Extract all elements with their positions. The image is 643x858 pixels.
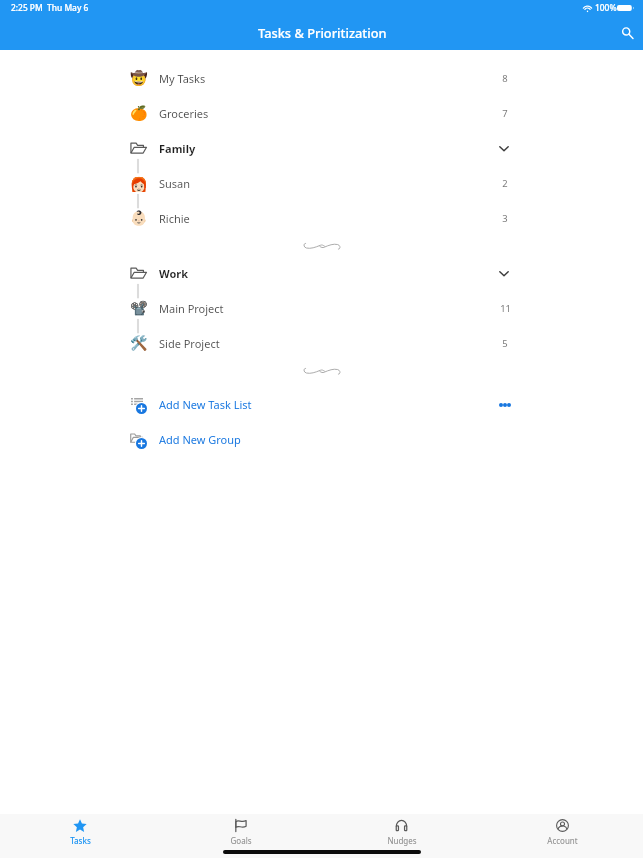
staticText: Account [547, 835, 578, 846]
staticText: 📽️ [130, 300, 148, 317]
button[interactable]: 🤠 [0, 61, 643, 96]
button[interactable]: Nudges [321, 814, 482, 858]
staticText: 7 [502, 107, 508, 120]
button[interactable]: Add New Group [0, 422, 643, 457]
staticText: 🍊 [130, 105, 148, 122]
button[interactable]: Family [0, 131, 643, 166]
staticText: 👩🏻‍🦰 [127, 176, 147, 192]
button[interactable]: Add New Task List [0, 387, 643, 422]
staticText: Tasks & Prioritization [258, 24, 387, 41]
button[interactable]: Search [615, 21, 637, 43]
staticText: Family [159, 141, 196, 156]
staticText: 2 [502, 177, 508, 190]
staticText: Susan [159, 176, 191, 191]
staticText: Tasks [70, 835, 91, 846]
staticText: 100% [595, 2, 617, 13]
button[interactable]: 👩🏻‍🦰 [0, 166, 643, 201]
staticText: Work [159, 266, 189, 281]
button[interactable]: 🍊 [0, 96, 643, 131]
button[interactable]: Tasks [0, 814, 160, 858]
button[interactable]: Goals [160, 814, 321, 858]
staticText: 5 [502, 337, 508, 350]
staticText: My Tasks [159, 71, 206, 86]
staticText: Side Project [159, 336, 220, 351]
staticText: 8 [502, 72, 508, 85]
button[interactable]: 🛠️ [0, 326, 643, 361]
button[interactable]: Work [0, 256, 643, 291]
staticText: Main Project [159, 301, 224, 316]
staticText: 11 [500, 302, 511, 315]
button[interactable]: 📽️ [0, 291, 643, 326]
button[interactable]: Account [482, 814, 643, 858]
staticText: Add New Task List [159, 397, 252, 412]
staticText: Nudges [387, 835, 417, 846]
staticText: 🛠️ [130, 335, 148, 352]
staticText: 🤠 [130, 70, 148, 87]
staticText: Richie [159, 211, 190, 226]
staticText: Add New Group [159, 432, 241, 447]
staticText: 2:25 PM [11, 2, 43, 13]
staticText: 👶🏻 [130, 210, 148, 227]
staticText: Goals [230, 835, 252, 846]
staticText: Groceries [159, 106, 209, 121]
button[interactable]: 👶🏻 [0, 201, 643, 236]
staticText: Thu May 6 [47, 2, 89, 13]
staticText: 3 [502, 212, 508, 225]
button[interactable]: More options [496, 398, 514, 412]
